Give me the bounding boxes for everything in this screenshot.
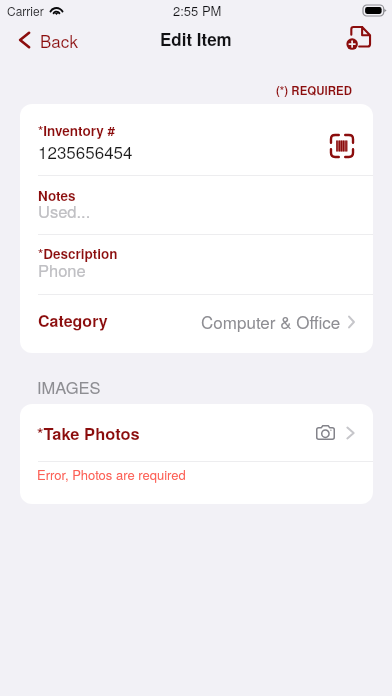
staticText: Notes (38, 186, 76, 205)
staticText: *Description (38, 244, 118, 263)
staticText: Edit Item (160, 27, 232, 51)
staticText: Computer & Office (201, 309, 341, 333)
button[interactable]: Add document (335, 22, 392, 55)
button[interactable]: Category (20, 295, 373, 353)
button[interactable]: Back (0, 22, 92, 60)
staticText: *Take Photos (37, 421, 140, 445)
staticText: Used... (38, 199, 91, 223)
staticText: *Inventory # (38, 121, 116, 140)
button[interactable]: *Description (20, 235, 373, 294)
button[interactable]: *Inventory # (20, 104, 373, 175)
button[interactable]: Notes (20, 176, 373, 234)
staticText: Error, Photos are required (37, 465, 186, 484)
staticText: Category (38, 309, 108, 332)
staticText: 2:55 PM (173, 1, 222, 20)
staticText: Phone (38, 258, 86, 282)
staticText: Back (40, 28, 78, 52)
staticText: (*) REQUIRED (276, 82, 353, 98)
button[interactable]: Scan barcode (327, 131, 357, 161)
staticText: 1235656454 (38, 139, 133, 163)
button[interactable]: *Take Photos (20, 404, 373, 461)
staticText: IMAGES (37, 375, 101, 399)
staticText: Carrier (7, 2, 44, 19)
